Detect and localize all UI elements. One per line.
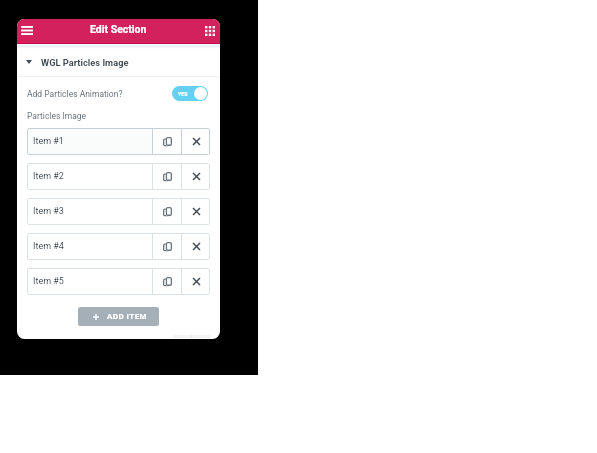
button[interactable]: Item #4 bbox=[27, 233, 210, 260]
staticText: Item #1 bbox=[33, 136, 64, 147]
staticText: ADD ITEM bbox=[107, 312, 148, 321]
staticText: WGL Particles Image bbox=[41, 57, 129, 68]
button[interactable]: Duplicate bbox=[153, 233, 181, 260]
staticText: Particles Image bbox=[27, 111, 87, 121]
button[interactable]: Menu bbox=[17, 19, 37, 43]
staticText: Add Particles Animation? bbox=[27, 89, 123, 99]
button[interactable]: Duplicate bbox=[153, 128, 181, 155]
button[interactable]: YES bbox=[172, 86, 208, 101]
button[interactable]: Remove bbox=[182, 233, 210, 260]
button[interactable]: Remove bbox=[182, 198, 210, 225]
button[interactable]: Apps bbox=[200, 19, 220, 43]
button[interactable]: ADD ITEM bbox=[78, 307, 159, 326]
staticText: YES bbox=[178, 91, 188, 97]
button[interactable]: Item #1 bbox=[27, 128, 210, 155]
button[interactable]: Duplicate bbox=[153, 198, 181, 225]
staticText: Edit Section bbox=[90, 23, 147, 35]
button[interactable]: WGL Particles Image bbox=[17, 49, 220, 76]
button[interactable]: Duplicate bbox=[153, 268, 181, 295]
staticText: Item #3 bbox=[33, 206, 64, 217]
button[interactable]: Remove bbox=[182, 163, 210, 190]
button[interactable]: Remove bbox=[182, 268, 210, 295]
staticText: Item #2 bbox=[33, 171, 64, 182]
button[interactable]: Duplicate bbox=[153, 163, 181, 190]
staticText: Item #5 bbox=[33, 276, 64, 287]
staticText: Item #4 bbox=[33, 241, 64, 252]
button[interactable]: Item #3 bbox=[27, 198, 210, 225]
button[interactable]: Remove bbox=[182, 128, 210, 155]
button[interactable]: Item #2 bbox=[27, 163, 210, 190]
button[interactable]: Item #5 bbox=[27, 268, 210, 295]
